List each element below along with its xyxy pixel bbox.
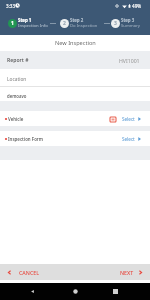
button[interactable]: Home <box>66 283 85 300</box>
staticText: Step 1 <box>18 17 32 23</box>
button[interactable]: 1 <box>8 17 48 29</box>
staticText: Do Inspection <box>70 23 98 29</box>
staticText: 3:33 <box>6 3 16 9</box>
staticText: CANCEL <box>19 269 40 276</box>
staticText: New Inspection <box>55 39 96 47</box>
staticText: Step 3 <box>121 17 135 23</box>
button[interactable]: Back <box>23 283 42 300</box>
staticText: demoavo <box>7 93 27 99</box>
button[interactable]: Inspection Form <box>0 131 150 146</box>
button[interactable]: NEXT <box>113 266 150 279</box>
staticText: 1 <box>11 20 14 27</box>
button[interactable]: 3 <box>111 17 140 29</box>
button[interactable]: 2 <box>60 17 98 29</box>
staticText: Select <box>122 116 135 122</box>
staticText: 49% <box>132 3 142 9</box>
staticText: 3 <box>114 20 117 27</box>
staticText: Select <box>122 136 135 142</box>
staticText: Report # <box>7 57 29 64</box>
button[interactable]: Recent apps <box>106 283 125 300</box>
staticText: Inspection Info <box>18 23 48 29</box>
button[interactable]: Vehicle <box>0 111 150 126</box>
staticText: Location <box>7 76 27 83</box>
staticText: HVI1001 <box>119 57 140 64</box>
staticText: 2 <box>63 20 66 27</box>
staticText: NEXT <box>120 269 134 276</box>
button[interactable]: Report # <box>0 51 150 69</box>
button[interactable]: Location <box>0 69 150 101</box>
button[interactable]: CANCEL <box>0 266 47 279</box>
staticText: Vehicle <box>8 116 24 122</box>
staticText: Summary <box>121 23 140 29</box>
staticText: Inspection Form <box>8 136 43 142</box>
staticText: Step 2 <box>70 17 84 23</box>
